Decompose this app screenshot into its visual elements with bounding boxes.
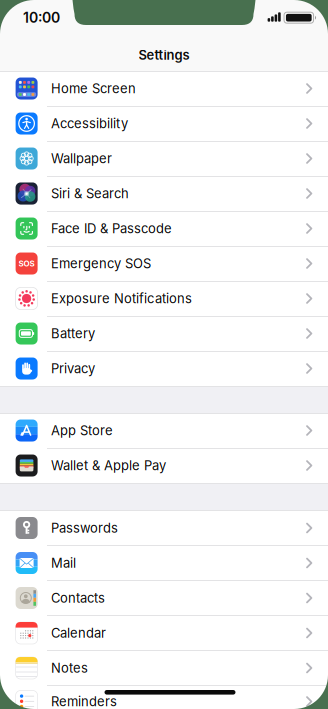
button[interactable]: Privacy: [0, 351, 328, 386]
staticText: SOS: [19, 259, 35, 268]
staticText: Privacy: [51, 361, 95, 376]
button[interactable]: Battery: [0, 316, 328, 351]
button[interactable]: Passwords: [0, 510, 328, 545]
button[interactable]: Wallpaper: [0, 141, 328, 176]
button[interactable]: SOS: [0, 246, 328, 281]
staticText: Wallpaper: [51, 151, 112, 166]
staticText: Calendar: [51, 625, 106, 641]
staticText: Siri & Search: [51, 186, 129, 201]
staticText: Accessibility: [51, 116, 128, 131]
button[interactable]: Siri & Search: [0, 176, 328, 211]
staticText: Wallet & Apple Pay: [51, 458, 166, 473]
staticText: Settings: [138, 47, 189, 63]
staticText: Emergency SOS: [51, 256, 151, 271]
button[interactable]: Mail: [0, 545, 328, 580]
button[interactable]: Home Screen: [0, 71, 328, 106]
button[interactable]: Calendar: [0, 615, 328, 650]
staticText: Mail: [51, 555, 76, 571]
button[interactable]: Notes: [0, 650, 328, 685]
button[interactable]: Exposure Notifications: [0, 281, 328, 316]
staticText: Battery: [51, 326, 95, 341]
staticText: App Store: [51, 423, 113, 438]
staticText: 10:00: [23, 9, 60, 26]
button[interactable]: Wallet & Apple Pay: [0, 448, 328, 483]
button[interactable]: Reminders: [0, 684, 328, 709]
button[interactable]: Face ID & Passcode: [0, 211, 328, 246]
staticText: Contacts: [51, 590, 105, 606]
staticText: Home Screen: [51, 81, 136, 96]
staticText: Reminders: [51, 694, 117, 709]
staticText: Face ID & Passcode: [51, 221, 172, 236]
staticText: Exposure Notifications: [51, 291, 192, 306]
button[interactable]: Contacts: [0, 580, 328, 615]
staticText: Passwords: [51, 520, 118, 536]
button[interactable]: App Store: [0, 413, 328, 448]
staticText: Notes: [51, 660, 88, 676]
button[interactable]: Accessibility: [0, 106, 328, 141]
